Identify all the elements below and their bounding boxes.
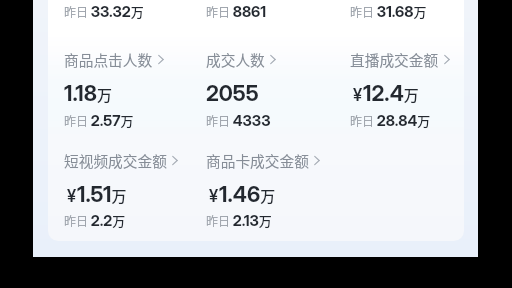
staticText: 商品卡成交金额 — [206, 150, 309, 171]
button[interactable]: 商品点击人数 — [64, 49, 164, 70]
button[interactable]: 短视频成交金额 — [64, 150, 178, 171]
button[interactable]: 直播成交金额 — [350, 49, 450, 70]
staticText: 昨日 31.68万 — [350, 2, 427, 21]
button[interactable]: 商品卡成交金额 — [206, 150, 320, 171]
staticText: 昨日 2.2万 — [64, 211, 126, 230]
staticText: 昨日 2.13万 — [206, 211, 272, 230]
staticText: ¥1.46万 — [209, 181, 276, 207]
staticText: 短视频成交金额 — [64, 150, 167, 171]
staticText: 成交人数 — [206, 49, 265, 70]
staticText: 昨日 28.84万 — [350, 111, 431, 130]
staticText: 2055 — [206, 80, 259, 106]
staticText: 直播成交金额 — [350, 49, 439, 70]
staticText: 昨日 2.57万 — [64, 111, 134, 130]
staticText: 1.18万 — [64, 80, 112, 106]
staticText: 昨日 8861 — [206, 2, 267, 20]
staticText: ¥1.51万 — [67, 181, 127, 207]
staticText: 商品点击人数 — [64, 49, 153, 70]
staticText: 昨日 4333 — [206, 111, 271, 129]
staticText: ¥12.4万 — [353, 80, 419, 106]
staticText: 昨日 33.32万 — [64, 2, 144, 21]
button[interactable]: 成交人数 — [206, 49, 276, 70]
